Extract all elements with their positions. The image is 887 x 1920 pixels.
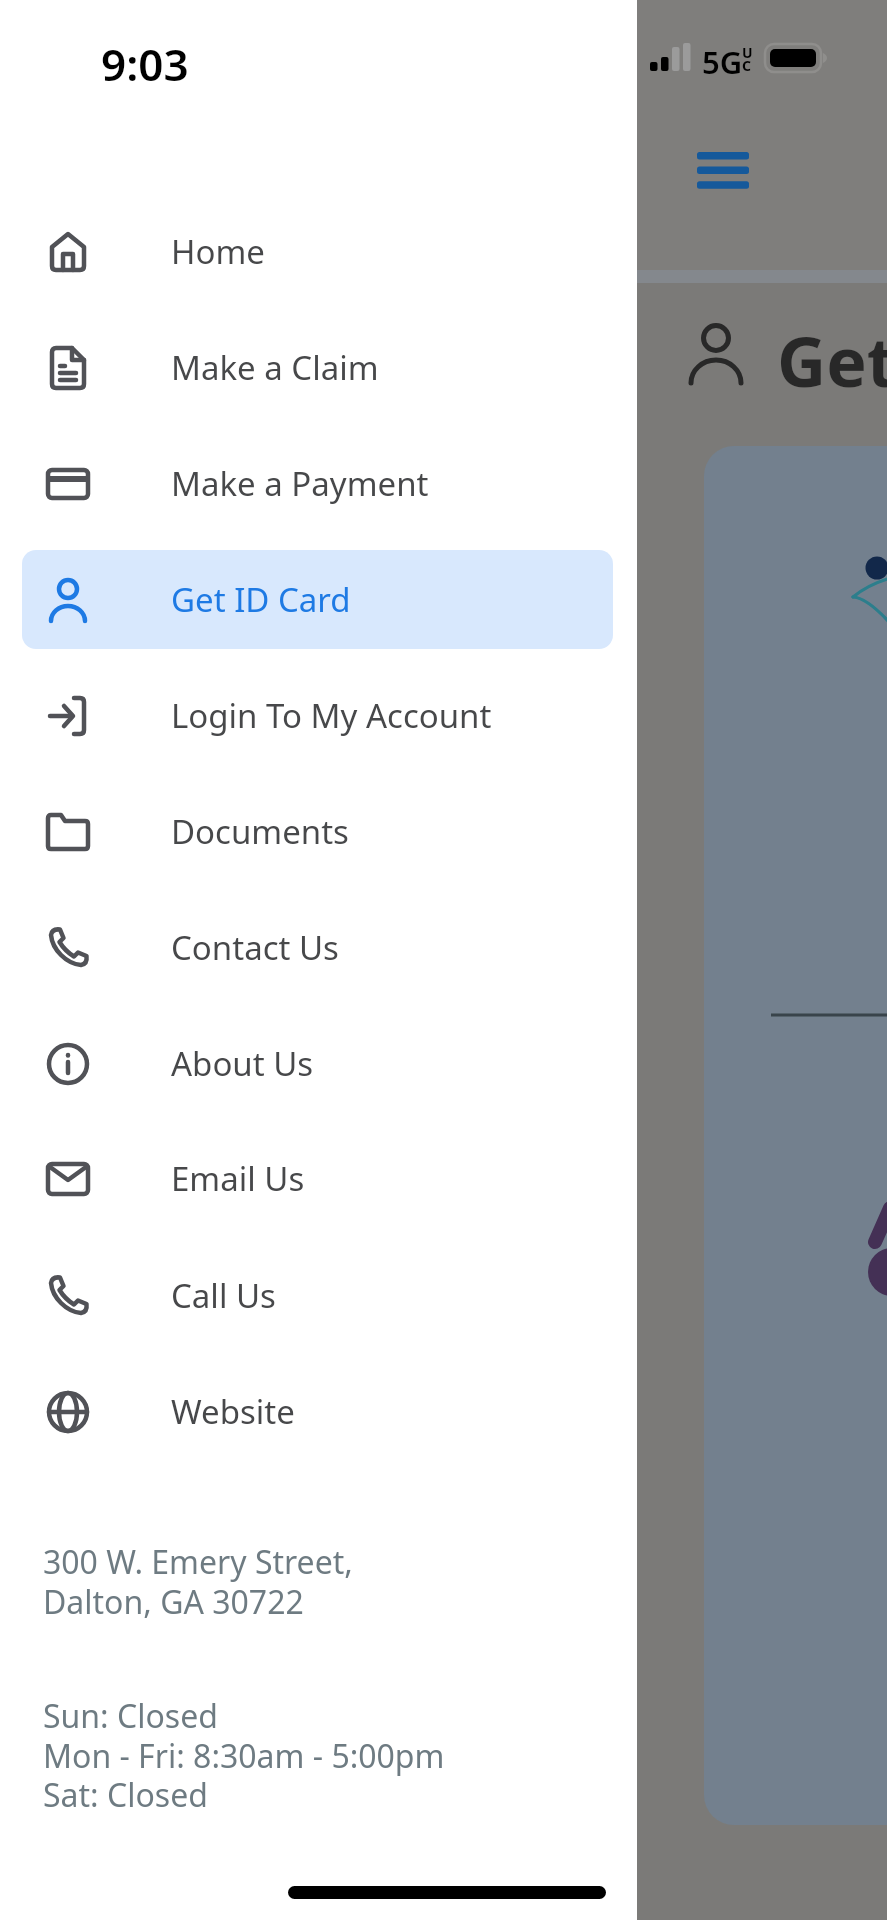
- button[interactable]: Call Us: [22, 1246, 613, 1345]
- staticText: 5G: [702, 41, 743, 83]
- staticText: Get ID Card: [777, 314, 887, 407]
- staticText: Home: [171, 229, 265, 274]
- button[interactable]: Documents: [22, 782, 613, 881]
- staticText: 9:03: [101, 34, 189, 94]
- button[interactable]: Login To My Account: [22, 666, 613, 765]
- button[interactable]: Get ID Card: [637, 0, 887, 1920]
- staticText: Login To My Account: [171, 693, 492, 738]
- staticText: About Us: [171, 1041, 314, 1086]
- staticText: Make a Payment: [171, 461, 429, 506]
- button[interactable]: Make a Claim: [22, 318, 613, 417]
- staticText: Sun: Closed Mon - Fri: 8:30am - 5:00pm S…: [43, 1694, 445, 1816]
- button[interactable]: Get ID Card: [22, 550, 613, 649]
- staticText: 300 W. Emery Street, Dalton, GA 30722: [43, 1540, 353, 1623]
- staticText: Contact Us: [171, 925, 339, 970]
- button[interactable]: Make a Payment: [22, 434, 613, 533]
- staticText: Email Us: [171, 1156, 305, 1201]
- staticText: U: [742, 43, 753, 62]
- button[interactable]: Contact Us: [22, 898, 613, 997]
- button[interactable]: Website: [22, 1362, 613, 1461]
- button[interactable]: About Us: [22, 1014, 613, 1113]
- staticText: Documents: [171, 809, 349, 854]
- button[interactable]: Email Us: [22, 1129, 613, 1228]
- staticText: C: [742, 56, 751, 75]
- button[interactable]: Home: [22, 202, 613, 301]
- staticText: Call Us: [171, 1273, 276, 1318]
- staticText: Get ID Card: [171, 577, 351, 622]
- staticText: Make a Claim: [171, 345, 379, 390]
- staticText: Website: [171, 1389, 295, 1434]
